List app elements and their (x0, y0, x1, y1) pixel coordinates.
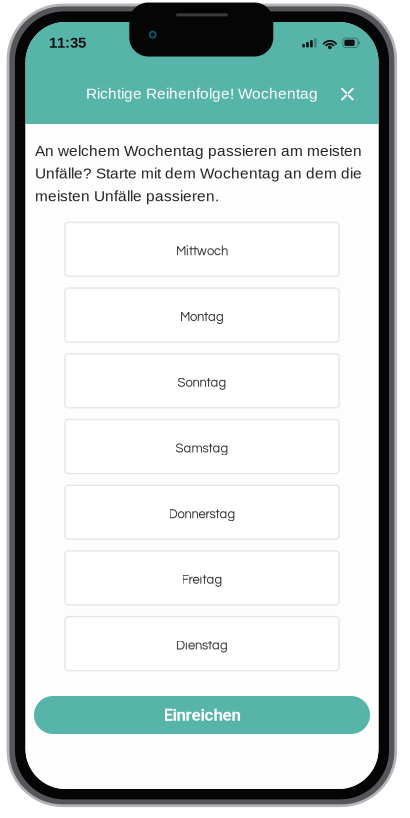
button[interactable]: Sonntag (65, 354, 339, 408)
button[interactable]: Einreichen (34, 696, 370, 734)
button[interactable]: Montag (65, 288, 339, 342)
button[interactable]: Mittwoch (65, 222, 339, 276)
staticText: Mittwoch (176, 245, 228, 258)
staticText: Samstag (175, 442, 228, 455)
staticText: Einreichen (163, 705, 240, 725)
staticText: An welchem Wochentag passieren am meiste… (35, 142, 362, 204)
staticText: 11:35 (49, 34, 86, 51)
button[interactable]: Close (332, 79, 362, 109)
button[interactable]: Freitag (65, 551, 339, 605)
staticText: Donnerstag (168, 507, 235, 521)
button[interactable]: Donnerstag (65, 485, 339, 539)
staticText: Richtige Reihenfolge! Wochentag (86, 85, 318, 102)
staticText: Dienstag (176, 639, 228, 652)
button[interactable]: Dienstag (65, 617, 339, 671)
button[interactable]: Samstag (65, 419, 339, 473)
staticText: Montag (180, 310, 224, 324)
staticText: Freitag (181, 573, 222, 586)
staticText: Sonntag (177, 376, 226, 389)
